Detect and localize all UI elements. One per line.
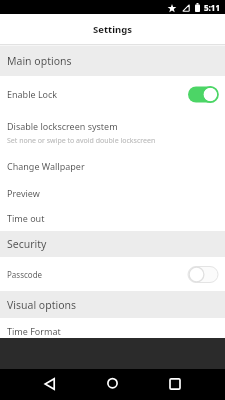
staticText: Time Format [7,325,61,337]
staticText: Settings [93,23,132,36]
staticText: Enable Lock [7,88,58,100]
staticText: Main options [7,54,72,68]
staticText: Passcode [7,269,43,280]
button[interactable] [44,378,56,390]
staticText: Change Wallpaper [7,160,85,172]
button[interactable]: Time Format [0,318,225,338]
button[interactable]: Time out [0,205,225,231]
staticText: Security [7,237,47,251]
button[interactable] [188,266,218,283]
button[interactable]: Change Wallpaper [0,152,225,180]
button[interactable]: Passcode [0,257,225,291]
button[interactable]: Enable Lock [0,76,225,112]
button[interactable] [107,378,118,389]
staticText: Disable lockscreen system [7,120,118,132]
staticText: Visual options [7,298,77,312]
staticText: Time out [7,212,45,224]
staticText: 5:11 [204,2,220,13]
button[interactable]: Disable lockscreen system [0,112,225,152]
staticText: Preview [7,187,40,199]
button[interactable] [169,378,181,390]
button[interactable]: Preview [0,180,225,205]
staticText: Set none or swipe to avoid double locksc… [7,136,156,146]
button[interactable] [188,86,218,103]
